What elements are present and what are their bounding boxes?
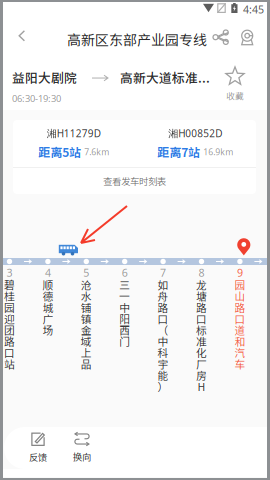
staticText: 舟 (158, 288, 169, 304)
staticText: 和 (234, 333, 245, 349)
staticText: 西 (119, 322, 130, 337)
button[interactable]: 收藏 (215, 62, 255, 106)
staticText: 道 (234, 322, 245, 337)
staticText: 迎 (4, 311, 15, 326)
staticText: 德 (42, 288, 53, 304)
staticText: 碧 (4, 277, 15, 292)
staticText: 龙 (196, 277, 207, 292)
staticText: 06:30-19:30 (12, 92, 61, 105)
staticText: 品 (81, 356, 92, 371)
staticText: 域 (81, 333, 92, 349)
staticText: 口 (4, 345, 15, 360)
staticText: 山 (234, 288, 245, 304)
staticText: 益阳大剧院 (12, 68, 77, 86)
staticText: H (197, 379, 205, 394)
staticText: 路 (4, 333, 15, 349)
staticText: 塘 (196, 288, 207, 304)
button[interactable]: 换向 (64, 430, 100, 466)
staticText: 化 (196, 345, 207, 360)
staticText: 口 (196, 311, 207, 326)
staticText: 厂 (196, 356, 207, 371)
button[interactable]: 查看发车时刻表 (13, 168, 256, 194)
staticText: 场 (42, 322, 53, 337)
staticText: 团 (4, 322, 15, 337)
button[interactable]: 反馈 (20, 430, 56, 466)
staticText: 16.9km (203, 146, 233, 158)
staticText: 阳 (119, 311, 130, 326)
staticText: 站 (4, 356, 15, 371)
staticText: 汽 (234, 345, 245, 360)
staticText: 距离7站 (157, 143, 200, 160)
staticText: 收藏 (226, 89, 244, 102)
staticText: 湘H00852D (168, 126, 222, 140)
staticText: 园 (234, 277, 245, 292)
staticText: 距离5站 (38, 143, 81, 160)
staticText: 3 (6, 265, 12, 280)
staticText: 门 (119, 333, 130, 349)
staticText: 路 (196, 299, 207, 315)
staticText: 广 (42, 311, 53, 326)
staticText: 园 (4, 299, 15, 315)
staticText: 中 (119, 299, 130, 315)
staticText: 能 (158, 367, 169, 383)
staticText: 高新区东部产业园专线 (67, 29, 207, 49)
staticText: 车 (234, 356, 245, 371)
staticText: 路 (234, 299, 245, 315)
staticText: 桂 (4, 288, 15, 304)
staticText: 7 (160, 265, 166, 280)
staticText: 准 (196, 333, 207, 349)
staticText: 反馈 (29, 450, 47, 464)
staticText: 口 (234, 311, 245, 326)
staticText: 6 (122, 265, 128, 280)
button[interactable]: Back (8, 24, 36, 48)
staticText: 中 (158, 333, 169, 349)
staticText: 一 (119, 288, 130, 304)
button[interactable]: Share (212, 29, 230, 45)
staticText: 湘H11279D (47, 126, 101, 140)
staticText: 5 (83, 265, 89, 280)
staticText: 换向 (73, 450, 91, 463)
staticText: 路 (158, 299, 169, 315)
staticText: 8 (198, 265, 204, 280)
staticText: 房 (196, 367, 207, 383)
staticText: 4 (45, 265, 51, 280)
staticText: 金 (81, 322, 92, 337)
staticText: （ (158, 322, 169, 337)
staticText: 镇 (81, 311, 92, 326)
staticText: 9 (237, 265, 243, 280)
staticText: 三 (119, 277, 130, 292)
staticText: 科 (158, 345, 169, 360)
staticText: 沧 (81, 277, 92, 292)
staticText: 城 (42, 299, 53, 315)
staticText: 水 (81, 288, 92, 304)
staticText: 顺 (42, 277, 53, 292)
button[interactable]: Stations map (240, 29, 255, 46)
staticText: 高新大道标准... (120, 68, 210, 86)
staticText: ） (158, 379, 169, 394)
staticText: 口 (158, 311, 169, 326)
staticText: 如 (158, 277, 169, 292)
staticText: 查看发车时刻表 (103, 174, 166, 188)
staticText: 4:45 (243, 2, 264, 16)
staticText: 铺 (81, 299, 92, 315)
staticText: 标 (196, 322, 207, 337)
staticText: 7.6km (84, 146, 109, 158)
staticText: 上 (81, 345, 92, 360)
staticText: 宇 (158, 356, 169, 371)
